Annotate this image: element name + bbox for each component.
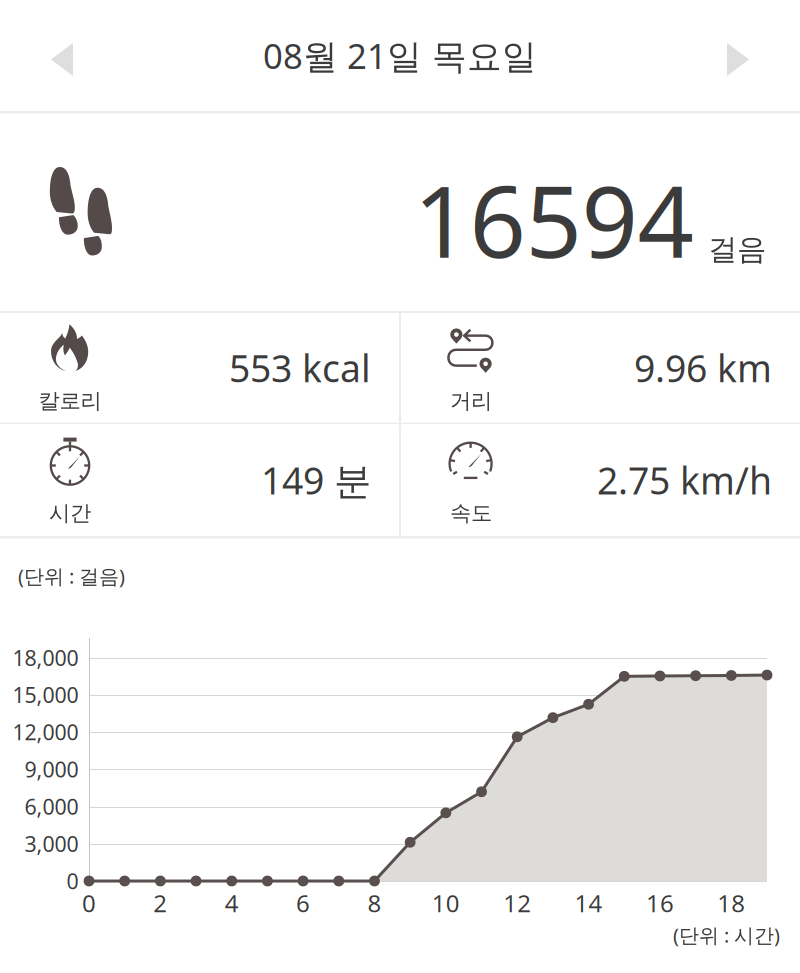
staticText: 칼로리 xyxy=(38,388,101,414)
button[interactable]: Previous day xyxy=(10,5,114,105)
staticText: 3,000 xyxy=(24,830,78,858)
staticText: 거리 xyxy=(450,388,492,414)
staticText: 08월 21일 목요일 xyxy=(263,32,537,78)
staticText: 149 분 xyxy=(261,455,371,505)
staticText: 0 xyxy=(82,887,96,919)
staticText: 16594 xyxy=(413,154,693,285)
staticText: 0 xyxy=(66,867,78,895)
staticText: 8 xyxy=(367,887,381,919)
staticText: 4 xyxy=(225,887,239,919)
button[interactable]: 속도 xyxy=(401,424,800,536)
button[interactable]: 시간 xyxy=(0,424,399,536)
staticText: 16 xyxy=(646,887,674,919)
button[interactable]: 칼로리 xyxy=(0,313,399,423)
staticText: 2 xyxy=(153,887,167,919)
staticText: (단위 : 시간) xyxy=(673,922,780,948)
button[interactable]: 거리 xyxy=(401,313,800,423)
staticText: 6,000 xyxy=(24,792,78,821)
staticText: 14 xyxy=(575,887,603,919)
staticText: 12 xyxy=(503,887,531,919)
staticText: 12,000 xyxy=(12,718,78,746)
staticText: 시간 xyxy=(49,500,91,526)
staticText: 10 xyxy=(432,887,460,919)
staticText: (단위 : 걸음) xyxy=(18,563,125,589)
staticText: 9,000 xyxy=(24,755,78,783)
button[interactable]: Next day xyxy=(686,5,790,105)
staticText: 걸음 xyxy=(708,231,766,267)
staticText: 9.96 km xyxy=(634,343,772,393)
staticText: 15,000 xyxy=(12,681,78,709)
staticText: 553 kcal xyxy=(229,343,371,393)
staticText: 2.75 km/h xyxy=(597,455,772,505)
staticText: 6 xyxy=(296,887,310,919)
staticText: 속도 xyxy=(450,500,492,526)
staticText: 18 xyxy=(717,887,745,919)
staticText: 18,000 xyxy=(12,643,78,672)
